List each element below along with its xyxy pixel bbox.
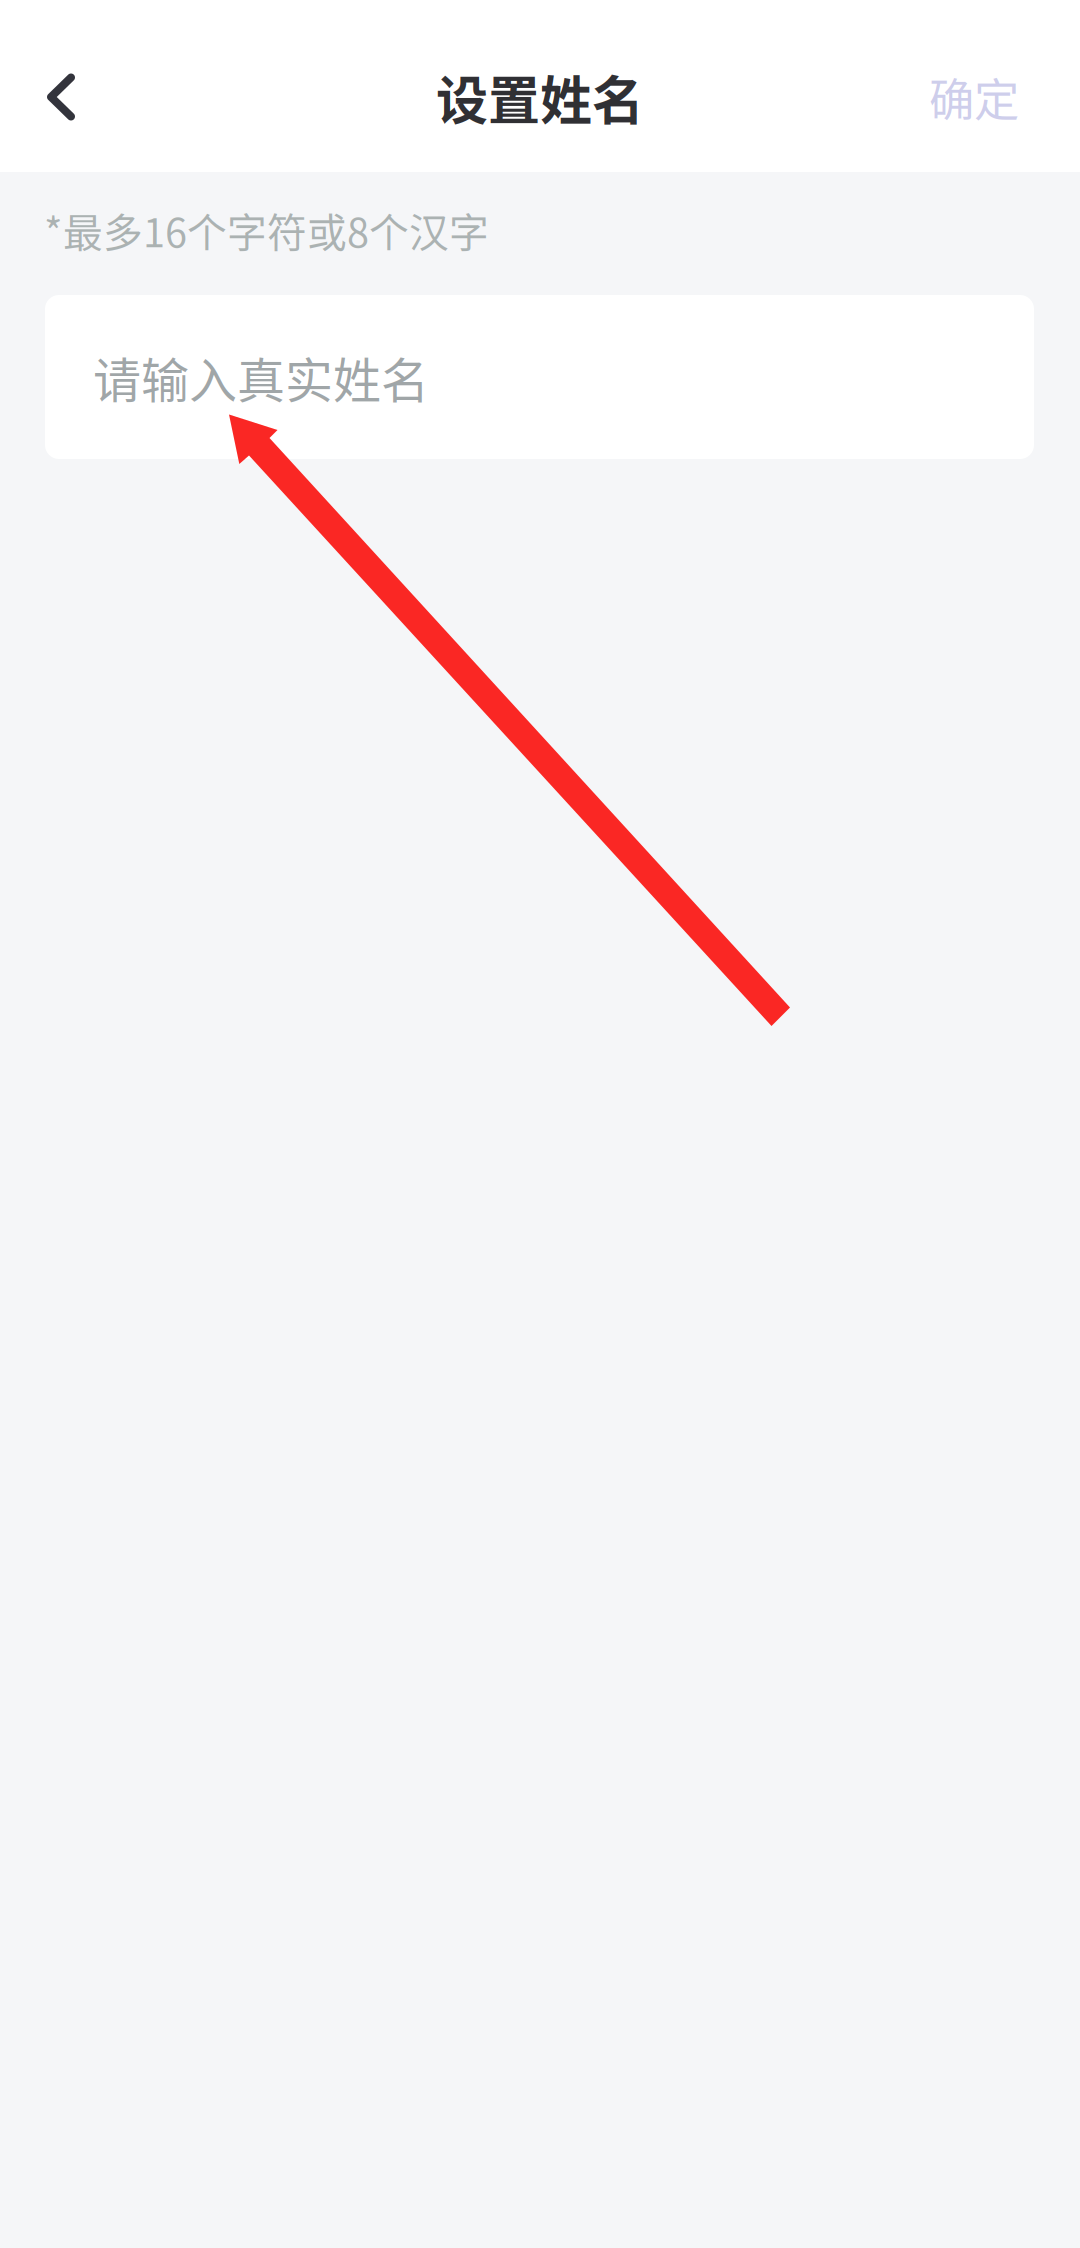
button[interactable]: 请输入真实姓名 xyxy=(45,295,1034,459)
staticText: 请输入真实姓名 xyxy=(93,342,429,412)
staticText: *最多16个字符或8个汉字 xyxy=(44,201,489,259)
staticText: 设置姓名 xyxy=(436,59,644,135)
staticText: 确定 xyxy=(929,64,1019,130)
button[interactable]: 返回 xyxy=(0,0,122,157)
button[interactable]: 确定 xyxy=(868,37,1080,157)
